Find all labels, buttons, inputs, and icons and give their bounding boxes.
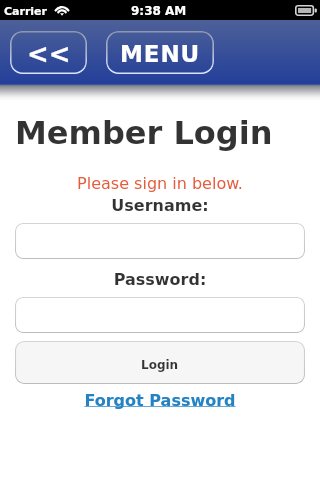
- button[interactable]: Login: [15, 341, 305, 384]
- staticText: Username:: [0, 196, 320, 215]
- staticText: Member Login: [15, 114, 273, 151]
- button[interactable]: Forgot Password: [0, 391, 320, 410]
- staticText: Please sign in below.: [0, 174, 320, 193]
- button[interactable]: MENU: [106, 31, 214, 74]
- button[interactable]: Back: [10, 31, 87, 74]
- staticText: Password:: [0, 270, 320, 289]
- staticText: 9:38 AM: [131, 4, 187, 18]
- staticText: Login: [141, 358, 179, 372]
- staticText: Carrier: [4, 5, 48, 18]
- button[interactable]: Password: [15, 297, 305, 333]
- staticText: MENU: [120, 41, 201, 68]
- staticText: <<: [27, 39, 71, 69]
- button[interactable]: Username: [15, 223, 305, 259]
